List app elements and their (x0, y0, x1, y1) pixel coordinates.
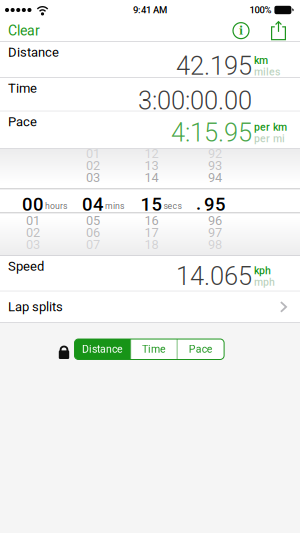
staticText: per km (254, 121, 287, 133)
staticText: Pace (189, 343, 213, 355)
staticText: 00 (22, 194, 44, 215)
staticText: 98 (208, 237, 222, 252)
staticText: 3:00:00.00 (138, 86, 252, 116)
staticText: 07 (86, 237, 100, 252)
staticText: Distance (8, 45, 59, 60)
staticText: mph (254, 276, 275, 288)
button[interactable]: Pace (178, 339, 224, 359)
staticText: 18 (144, 237, 158, 252)
staticText: 97 (208, 225, 222, 240)
staticText: Lap splits (8, 299, 63, 314)
staticText: 05 (86, 213, 100, 228)
staticText: 42.195 (176, 51, 252, 81)
staticText: 01 (26, 213, 40, 228)
staticText: secs (163, 201, 181, 211)
staticText: 01 (86, 146, 100, 161)
staticText: 16 (144, 213, 158, 228)
staticText: Time (8, 81, 37, 96)
staticText: 15 (140, 194, 162, 215)
staticText: 04 (82, 194, 104, 215)
staticText: per mi (254, 132, 285, 145)
staticText: miles (254, 66, 280, 78)
staticText: 02 (86, 158, 100, 173)
staticText: Time (142, 343, 166, 355)
staticText: kph (254, 265, 271, 277)
staticText: i (239, 24, 243, 38)
staticText: 14.065 (176, 261, 252, 291)
button[interactable]: Info (233, 23, 249, 39)
staticText: 17 (144, 225, 158, 240)
staticText: 94 (208, 170, 222, 185)
staticText: 14 (144, 170, 158, 185)
staticText: mins (105, 201, 124, 211)
staticText: Clear (8, 22, 40, 39)
button[interactable]: Time (131, 339, 177, 359)
staticText: hours (45, 201, 67, 211)
staticText: 03 (26, 237, 40, 252)
staticText: Distance (82, 343, 123, 355)
button[interactable]: Share (249, 21, 300, 41)
staticText: 12 (144, 146, 158, 161)
staticText: 4:15.95 (171, 118, 252, 148)
staticText: 9:41 AM (133, 4, 167, 15)
staticText: 93 (208, 158, 222, 173)
button[interactable]: Lap splits (0, 291, 300, 323)
staticText: Pace (8, 114, 37, 129)
staticText: 100% (249, 4, 271, 15)
staticText: . (196, 193, 201, 214)
staticText: 03 (86, 170, 100, 185)
staticText: 13 (144, 158, 158, 173)
button[interactable]: Clear (0, 22, 40, 39)
button[interactable]: Distance (74, 339, 130, 359)
staticText: 95 (204, 194, 226, 215)
staticText: 02 (26, 225, 40, 240)
staticText: 96 (208, 213, 222, 228)
staticText: Speed (8, 259, 44, 274)
staticText: 06 (86, 225, 100, 240)
staticText: km (254, 54, 268, 67)
staticText: 92 (208, 146, 222, 161)
